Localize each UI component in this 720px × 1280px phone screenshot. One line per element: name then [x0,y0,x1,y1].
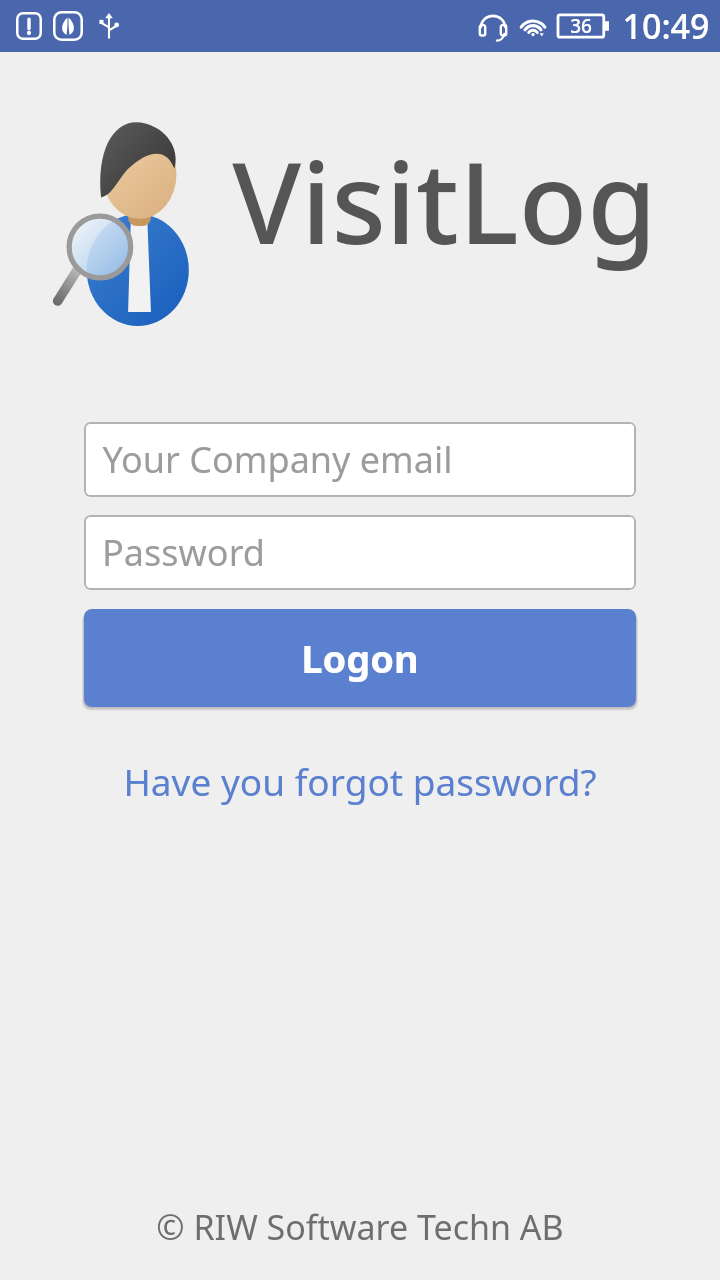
staticText: 10:49 [622,3,710,49]
button[interactable]: Your Company email [84,422,636,497]
staticText: Have you forgot password? [123,756,597,806]
staticText: Your Company email [102,435,453,484]
staticText: Logon [301,632,419,684]
button[interactable]: Password [84,515,636,590]
staticText: Password [102,528,265,577]
staticText: VisitLog [232,124,657,277]
button[interactable]: Have you forgot password? [103,750,617,812]
staticText: © RIW Software Techn AB [156,1204,564,1250]
button[interactable]: Logon [84,609,636,707]
staticText: 36 [570,13,592,39]
